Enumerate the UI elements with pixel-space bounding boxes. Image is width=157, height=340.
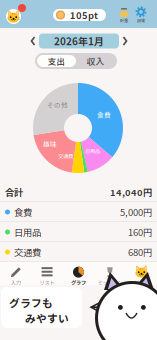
staticText: みやすい — [25, 310, 69, 326]
button[interactable]: 入力 — [0, 262, 31, 288]
staticText: グラフも — [9, 295, 53, 310]
staticText: 105pt — [70, 8, 98, 22]
staticText: 日用品 — [85, 147, 100, 155]
button[interactable]: Savings — [115, 5, 133, 25]
staticText: 食費 — [97, 110, 111, 120]
button[interactable]: 食費 — [0, 202, 157, 222]
button[interactable]: Previous month — [28, 34, 38, 48]
staticText: 入力 — [11, 279, 21, 286]
staticText: その他 — [47, 100, 68, 110]
staticText: 14,040円 — [110, 185, 152, 199]
button[interactable]: Settings — [132, 5, 150, 25]
button[interactable]: 2026年1月 — [39, 33, 119, 48]
staticText: 日用品 — [14, 225, 41, 239]
staticText: 合計 — [5, 185, 23, 199]
staticText: 2026年1月 — [54, 34, 104, 48]
staticText: 680円 — [128, 245, 152, 259]
staticText: 食費 — [14, 205, 32, 219]
staticText: グラフ — [71, 279, 86, 286]
staticText: 5,000円 — [120, 205, 152, 219]
button[interactable]: 日用品 — [0, 222, 157, 242]
button[interactable]: グラフ — [63, 262, 94, 288]
staticText: 貯金 — [120, 17, 128, 24]
staticText: リスト — [40, 279, 55, 286]
button[interactable]: 収入 — [76, 55, 115, 67]
button[interactable]: 105pt — [53, 9, 106, 21]
staticText: 趣味 — [43, 139, 57, 149]
staticText: 設定 — [137, 17, 145, 24]
staticText: ミッション — [97, 279, 122, 286]
staticText: 支出 — [47, 55, 65, 67]
button[interactable]: ミッション — [94, 262, 126, 288]
button[interactable]: 合計 — [0, 182, 157, 202]
button[interactable]: Next month — [120, 34, 130, 48]
button[interactable]: Profile — [3, 2, 29, 26]
staticText: 160円 — [128, 225, 152, 239]
staticText: 交通費 — [14, 245, 41, 259]
staticText: 収入 — [86, 55, 104, 67]
button[interactable]: 交通費 — [0, 242, 157, 262]
staticText: 🐱 — [134, 265, 149, 279]
staticText: 交通費 — [58, 152, 73, 160]
staticText: 🐱 — [6, 9, 21, 24]
button[interactable]: 🐱 — [126, 262, 157, 288]
button[interactable]: リスト — [31, 262, 63, 288]
staticText: ゲーム — [134, 279, 149, 286]
button[interactable]: 支出 — [37, 55, 76, 67]
